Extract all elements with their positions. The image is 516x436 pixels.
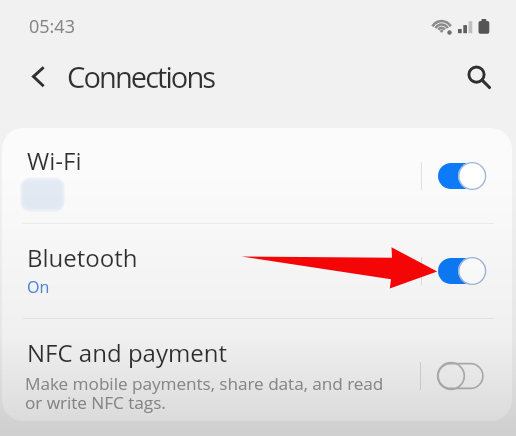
button[interactable]: NFC and payment xyxy=(2,318,512,421)
staticText: Make mobile payments, share data, and re… xyxy=(25,372,384,414)
staticText: Wi-Fi xyxy=(27,144,82,177)
staticText: On xyxy=(27,276,50,298)
button[interactable]: Wi-Fi xyxy=(2,128,512,223)
button[interactable]: Toggle off xyxy=(437,361,484,391)
staticText: Connections xyxy=(67,57,215,96)
button[interactable]: Toggle on xyxy=(438,256,485,286)
staticText: NFC and payment xyxy=(27,336,228,369)
button[interactable]: Back xyxy=(20,59,55,94)
staticText: 05:43 xyxy=(29,14,75,39)
button[interactable]: Search xyxy=(460,57,496,93)
button[interactable]: Toggle on xyxy=(438,161,485,191)
staticText: Bluetooth xyxy=(27,241,138,274)
button[interactable]: Bluetooth xyxy=(2,223,512,318)
